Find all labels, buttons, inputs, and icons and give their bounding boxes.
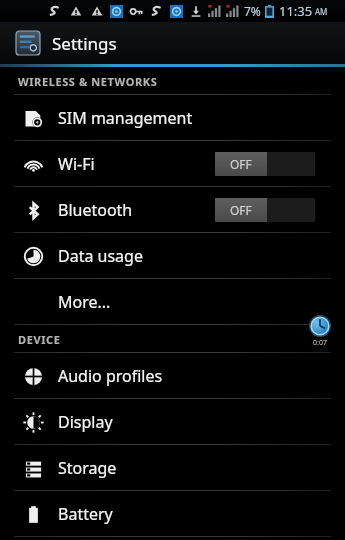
staticText: SIM management <box>58 107 193 129</box>
button[interactable]: Toggle off <box>215 152 315 176</box>
button[interactable]: Display <box>0 399 345 444</box>
staticText: AM <box>315 6 328 17</box>
staticText: Battery <box>58 503 113 525</box>
button[interactable]: SIM management <box>0 95 345 140</box>
staticText: 11:35 <box>279 2 313 20</box>
staticText: 7% <box>244 3 261 19</box>
staticText: DEVICE <box>18 332 61 347</box>
staticText: Storage <box>58 457 117 479</box>
staticText: Wi-Fi <box>58 153 95 175</box>
button[interactable]: Toggle off <box>215 198 315 222</box>
button[interactable]: Settings <box>0 22 345 64</box>
button[interactable]: Wi-Fi <box>0 141 345 186</box>
staticText: WIRELESS & NETWORKS <box>18 74 158 89</box>
button[interactable]: Storage <box>0 445 345 490</box>
staticText: Display <box>58 411 113 433</box>
staticText: OFF <box>230 202 252 218</box>
staticText: 0:07 <box>313 338 327 348</box>
staticText: Audio profiles <box>58 365 163 387</box>
button[interactable]: Battery <box>0 491 345 536</box>
staticText: OFF <box>230 156 252 172</box>
button[interactable]: Data usage <box>0 233 345 278</box>
button[interactable]: More... <box>0 279 345 324</box>
staticText: Data usage <box>58 245 143 267</box>
button[interactable]: Audio profiles <box>0 353 345 398</box>
staticText: Bluetooth <box>58 199 133 221</box>
staticText: More... <box>58 291 111 313</box>
staticText: Settings <box>52 32 117 55</box>
button[interactable]: Bluetooth <box>0 187 345 232</box>
